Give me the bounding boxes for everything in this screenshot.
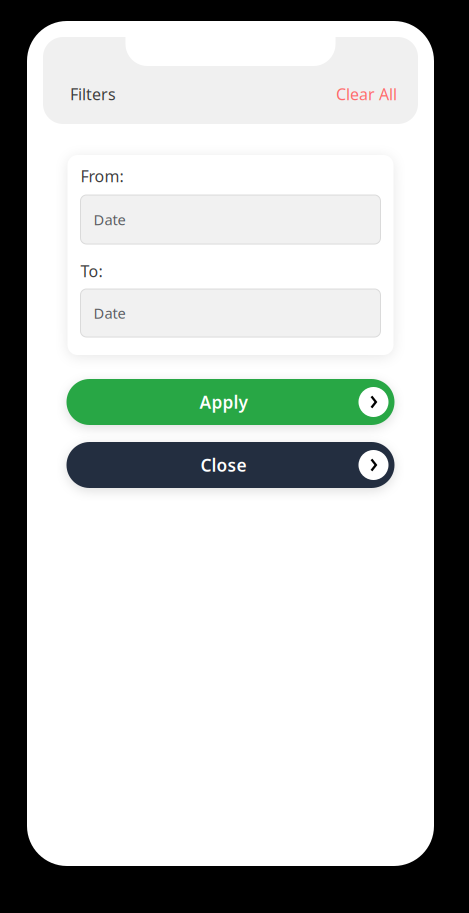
staticText: Clear All xyxy=(336,83,397,105)
staticText: Filters xyxy=(70,83,116,105)
button[interactable]: Clear All xyxy=(336,83,397,105)
staticText: Close xyxy=(200,453,246,476)
button[interactable]: Close xyxy=(66,442,394,488)
staticText: Date xyxy=(93,303,125,323)
staticText: From: xyxy=(80,165,123,187)
staticText: Apply xyxy=(199,390,247,413)
button[interactable]: Apply xyxy=(66,379,394,425)
staticText: To: xyxy=(80,260,102,282)
staticText: Date xyxy=(93,210,125,229)
